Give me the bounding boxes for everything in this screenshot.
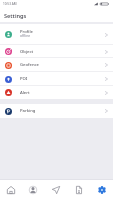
button[interactable]: Object xyxy=(0,45,113,58)
staticText: Object xyxy=(20,49,34,55)
staticText: Profile xyxy=(20,29,33,35)
staticText: Alert xyxy=(20,90,30,96)
button[interactable]: Profile xyxy=(0,24,113,45)
button[interactable]: Settings xyxy=(90,180,113,200)
button[interactable]: Alert xyxy=(0,86,113,99)
button[interactable]: Parking xyxy=(0,104,113,118)
staticText: POI xyxy=(20,76,28,82)
staticText: 10:53 AM xyxy=(3,2,17,6)
button[interactable]: Navigate xyxy=(44,180,67,200)
button[interactable]: Geofence xyxy=(0,58,113,72)
staticText: Geofence xyxy=(20,62,39,68)
staticText: Settings xyxy=(4,12,27,20)
staticText: offline xyxy=(20,33,31,38)
button[interactable]: Reports xyxy=(67,180,90,200)
button[interactable]: Account xyxy=(22,180,44,200)
button[interactable]: POI xyxy=(0,72,113,86)
button[interactable]: Home xyxy=(0,180,22,200)
staticText: Parking xyxy=(20,108,36,114)
